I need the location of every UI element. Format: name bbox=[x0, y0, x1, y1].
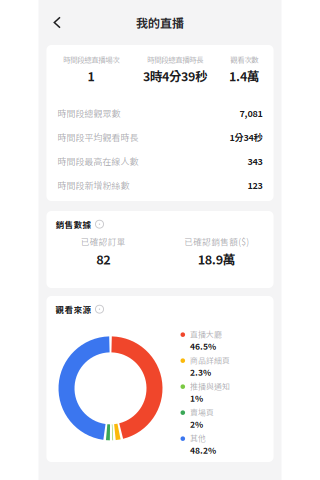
staticText: 時間段平均觀看時長 bbox=[57, 130, 138, 143]
staticText: 123 bbox=[247, 178, 262, 191]
staticText: 時間段最高在線人數 bbox=[57, 154, 138, 167]
staticText: 推播與通知 bbox=[190, 380, 230, 392]
staticText: 時間段總觀眾數 bbox=[57, 106, 120, 119]
staticText: 7,081 bbox=[239, 106, 262, 119]
staticText: 已確認銷售額($) bbox=[184, 235, 249, 248]
staticText: 時間段總直播時長 bbox=[147, 54, 203, 65]
staticText: 1.4萬 bbox=[229, 67, 259, 85]
staticText: 其他 bbox=[190, 432, 206, 444]
staticText: 343 bbox=[247, 154, 262, 167]
staticText: 商品詳細頁 bbox=[190, 354, 230, 366]
staticText: 銷售數據 bbox=[55, 218, 91, 230]
staticText: 我的直播 bbox=[136, 14, 184, 31]
staticText: 1分34秒 bbox=[229, 130, 262, 143]
staticText: 觀看次數 bbox=[230, 54, 258, 65]
staticText: 已確認訂單 bbox=[81, 235, 126, 248]
staticText: 3時4分39秒 bbox=[143, 67, 207, 85]
staticText: 48.2% bbox=[190, 444, 216, 456]
staticText: 1% bbox=[190, 392, 203, 404]
staticText: 時間段新增粉絲數 bbox=[57, 178, 129, 191]
staticText: 1 bbox=[87, 67, 94, 85]
staticText: 46.5% bbox=[190, 340, 216, 352]
staticText: 18.9萬 bbox=[198, 250, 236, 268]
staticText: 時間段總直播場次 bbox=[63, 54, 119, 65]
staticText: 2.3% bbox=[190, 366, 211, 378]
button[interactable]: Back bbox=[46, 6, 68, 38]
staticText: 觀看來源 bbox=[55, 303, 91, 315]
staticText: 82 bbox=[96, 250, 110, 268]
staticText: 賣場頁 bbox=[190, 406, 214, 418]
staticText: 2% bbox=[190, 418, 203, 430]
staticText: 直播大廳 bbox=[190, 328, 222, 340]
